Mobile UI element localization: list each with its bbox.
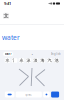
staticText: 氵 bbox=[12, 58, 16, 63]
staticText: 池 bbox=[54, 58, 58, 63]
button[interactable]: 氵 bbox=[12, 58, 17, 63]
button[interactable]: water bbox=[3, 52, 13, 56]
button[interactable]: Numbers bbox=[5, 91, 14, 97]
staticText: 9:41 bbox=[4, 1, 11, 6]
button[interactable]: Expand candidates bbox=[30, 51, 35, 56]
button[interactable]: 池 bbox=[54, 58, 59, 63]
staticText: 汽 bbox=[47, 58, 51, 63]
staticText: English bbox=[51, 52, 61, 56]
button[interactable]: 淡 bbox=[33, 58, 38, 63]
button[interactable]: 汽 bbox=[47, 58, 52, 63]
staticText: · bbox=[32, 50, 33, 58]
staticText: 海 bbox=[40, 58, 44, 63]
button[interactable]: 海 bbox=[40, 58, 45, 63]
staticText: 文 bbox=[3, 12, 8, 19]
button[interactable]: Input source bbox=[1, 11, 10, 20]
button[interactable]: Delete bbox=[43, 91, 50, 97]
staticText: water bbox=[5, 52, 12, 56]
button[interactable]: Return bbox=[51, 91, 59, 97]
staticText: 水 bbox=[5, 58, 9, 63]
button[interactable]: 水 bbox=[5, 58, 10, 63]
staticText: 泳 bbox=[26, 58, 30, 63]
button[interactable]: 永 bbox=[19, 58, 24, 63]
staticText: 淡 bbox=[33, 58, 37, 63]
staticText: space bbox=[25, 93, 32, 96]
button[interactable]: 泳 bbox=[26, 58, 31, 63]
staticText: water bbox=[2, 33, 20, 42]
button[interactable]: space bbox=[16, 91, 42, 97]
staticText: 永 bbox=[19, 58, 23, 63]
